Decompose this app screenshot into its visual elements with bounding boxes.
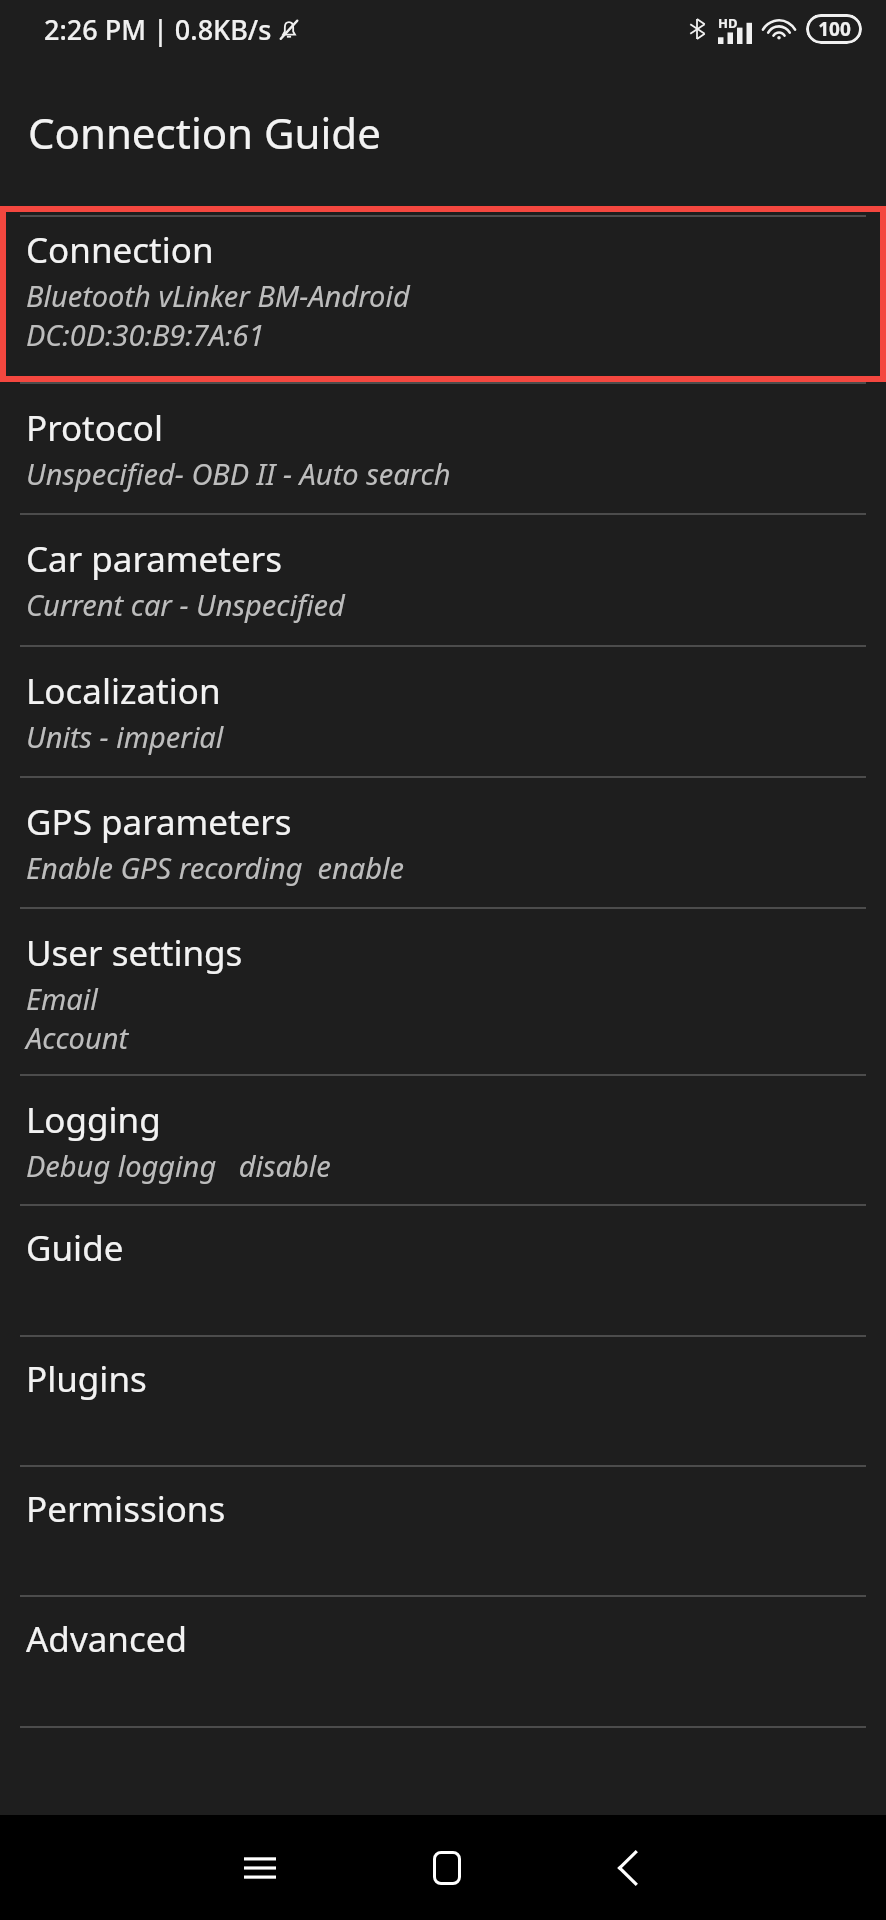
button[interactable]: User settings [0,909,886,1074]
staticText: Permissions [26,1485,226,1533]
button[interactable]: Permissions [0,1467,886,1595]
button[interactable]: Home [402,1823,492,1913]
staticText: Logging [26,1096,161,1144]
staticText: Units - imperial [26,717,224,756]
staticText: GPS parameters [26,798,292,846]
staticText: Car parameters [26,535,282,583]
staticText: Email [26,979,98,1018]
staticText: Debug logging disable [26,1146,331,1185]
staticText: Advanced [26,1615,188,1663]
button[interactable]: Back [583,1823,673,1913]
button[interactable]: Connection [0,206,886,382]
staticText: HD [718,14,738,32]
staticText: DC:0D:30:B9:7A:61 [26,315,265,354]
button[interactable]: Protocol [0,384,886,513]
staticText: Account [26,1018,129,1057]
staticText: Guide [26,1224,124,1272]
staticText: 100 [818,16,851,42]
staticText: Protocol [26,404,163,452]
staticText: Localization [26,667,221,715]
button[interactable]: Plugins [0,1337,886,1465]
button[interactable]: GPS parameters [0,778,886,907]
staticText: Current car - Unspecified [26,585,345,624]
staticText: Bluetooth vLinker BM-Android [26,276,410,315]
button[interactable]: Recent apps [215,1823,305,1913]
staticText: Connection [26,226,214,274]
button[interactable]: Localization [0,647,886,776]
staticText: 2:26 PM | 0.8KB/s [44,11,272,48]
button[interactable]: Car parameters [0,515,886,645]
staticText: User settings [26,929,243,977]
staticText: Unspecified- OBD II - Auto search [26,454,451,493]
button[interactable]: Logging [0,1076,886,1204]
staticText: Enable GPS recording enable [26,848,405,887]
staticText: Connection Guide [28,104,381,161]
button[interactable]: Guide [0,1206,886,1335]
button[interactable]: Advanced [0,1597,886,1726]
staticText: Plugins [26,1355,147,1403]
